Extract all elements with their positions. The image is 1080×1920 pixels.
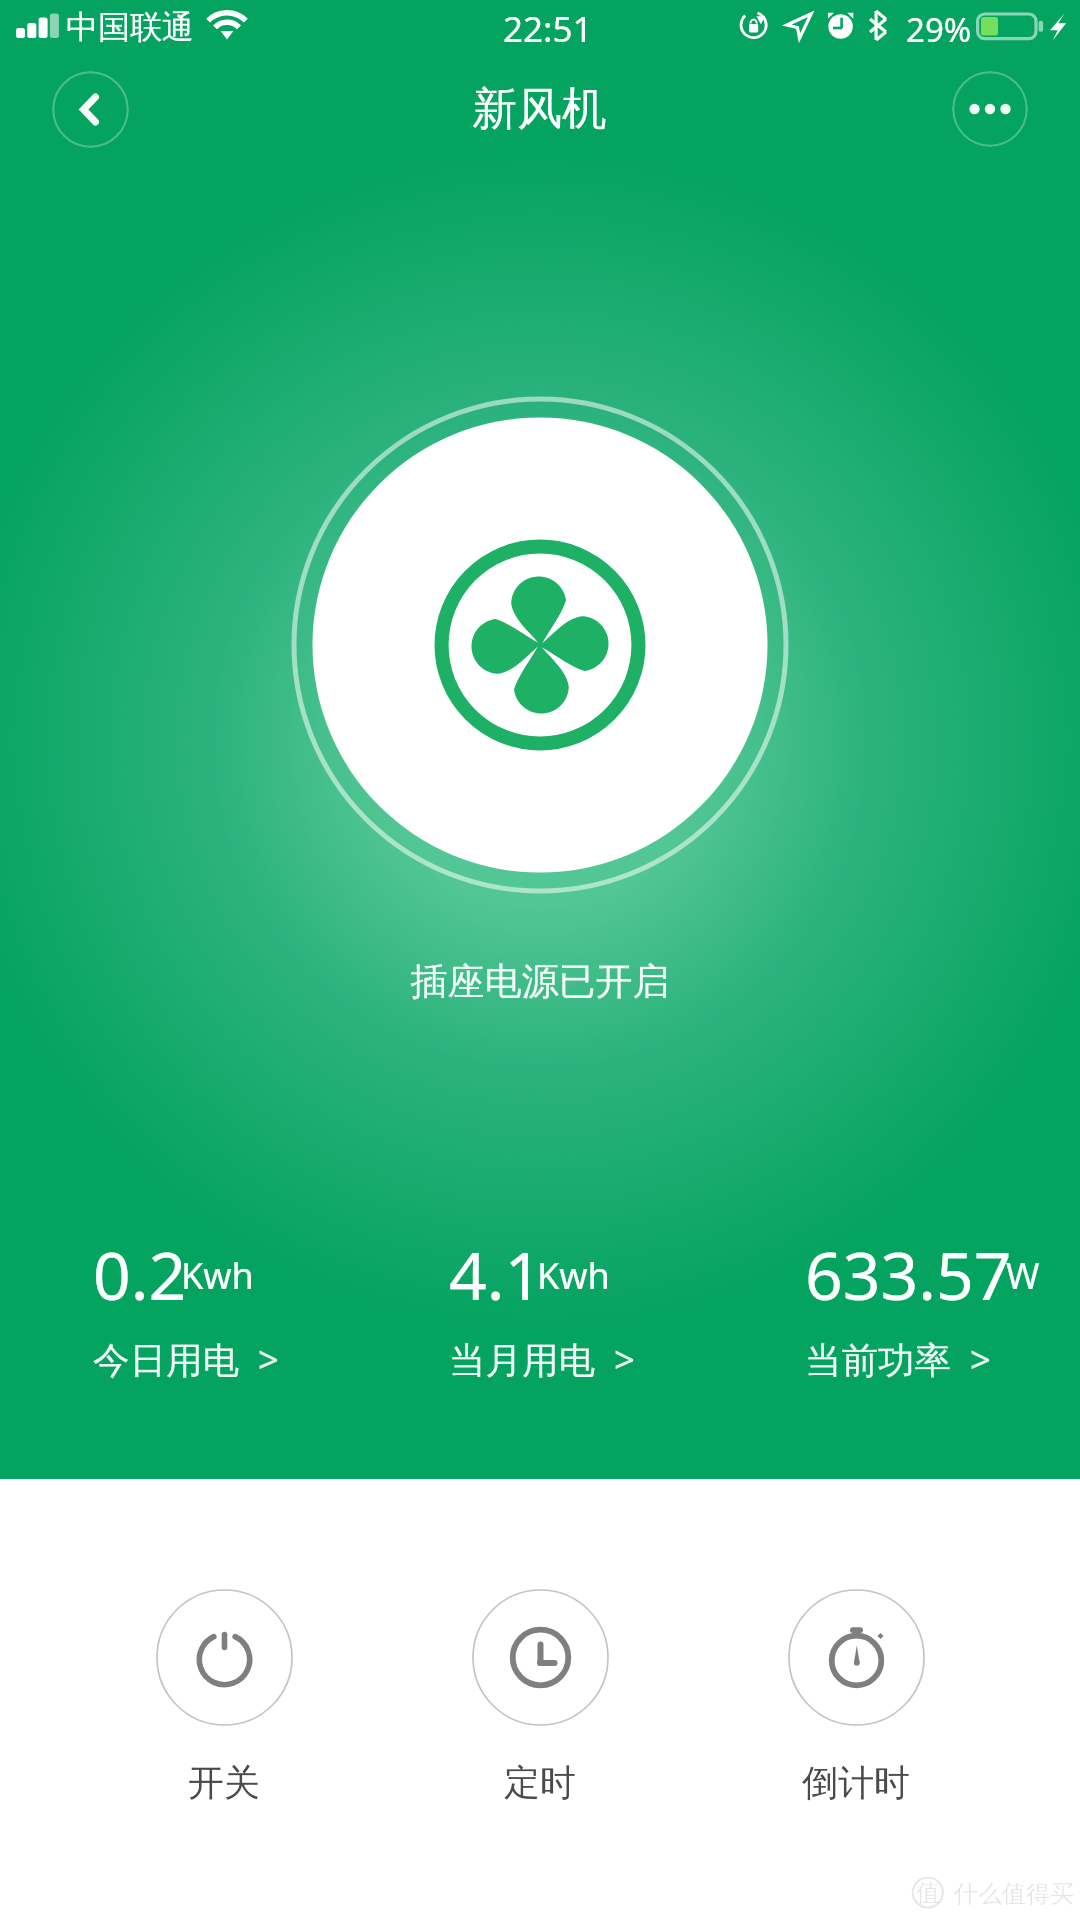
button[interactable]: 开关 bbox=[124, 1589, 324, 1771]
staticText: 29% bbox=[906, 7, 972, 52]
staticText: 定时 bbox=[504, 1760, 576, 1805]
staticText: 当月用电 > bbox=[449, 1334, 635, 1384]
staticText: 0.2 bbox=[93, 1229, 187, 1319]
staticText: 4.1 bbox=[449, 1229, 543, 1319]
staticText: 什么值得买 bbox=[954, 1879, 1074, 1909]
button[interactable]: 定时 bbox=[440, 1589, 640, 1771]
button[interactable]: Back bbox=[52, 71, 129, 148]
staticText: 当前功率 > bbox=[805, 1334, 991, 1384]
button[interactable]: Power toggle bbox=[290, 395, 790, 895]
staticText: 值 bbox=[916, 1878, 940, 1908]
staticText: 中国联通 bbox=[66, 7, 194, 47]
staticText: Kwh bbox=[181, 1251, 254, 1300]
staticText: 开关 bbox=[188, 1760, 260, 1805]
button[interactable]: More options bbox=[952, 71, 1028, 147]
staticText: 倒计时 bbox=[802, 1760, 910, 1805]
staticText: 今日用电 > bbox=[93, 1334, 279, 1384]
staticText: 22:51 bbox=[503, 5, 593, 53]
staticText: W bbox=[1006, 1251, 1040, 1300]
button[interactable]: 633.57 bbox=[805, 1229, 1046, 1369]
staticText: 633.57 bbox=[805, 1229, 1012, 1319]
button[interactable]: 0.2 bbox=[93, 1229, 279, 1369]
button[interactable]: 4.1 bbox=[449, 1229, 635, 1369]
staticText: 新风机 bbox=[472, 81, 607, 138]
button[interactable]: 倒计时 bbox=[756, 1589, 956, 1771]
staticText: Kwh bbox=[537, 1251, 610, 1300]
staticText: 插座电源已开启 bbox=[0, 958, 1080, 1005]
